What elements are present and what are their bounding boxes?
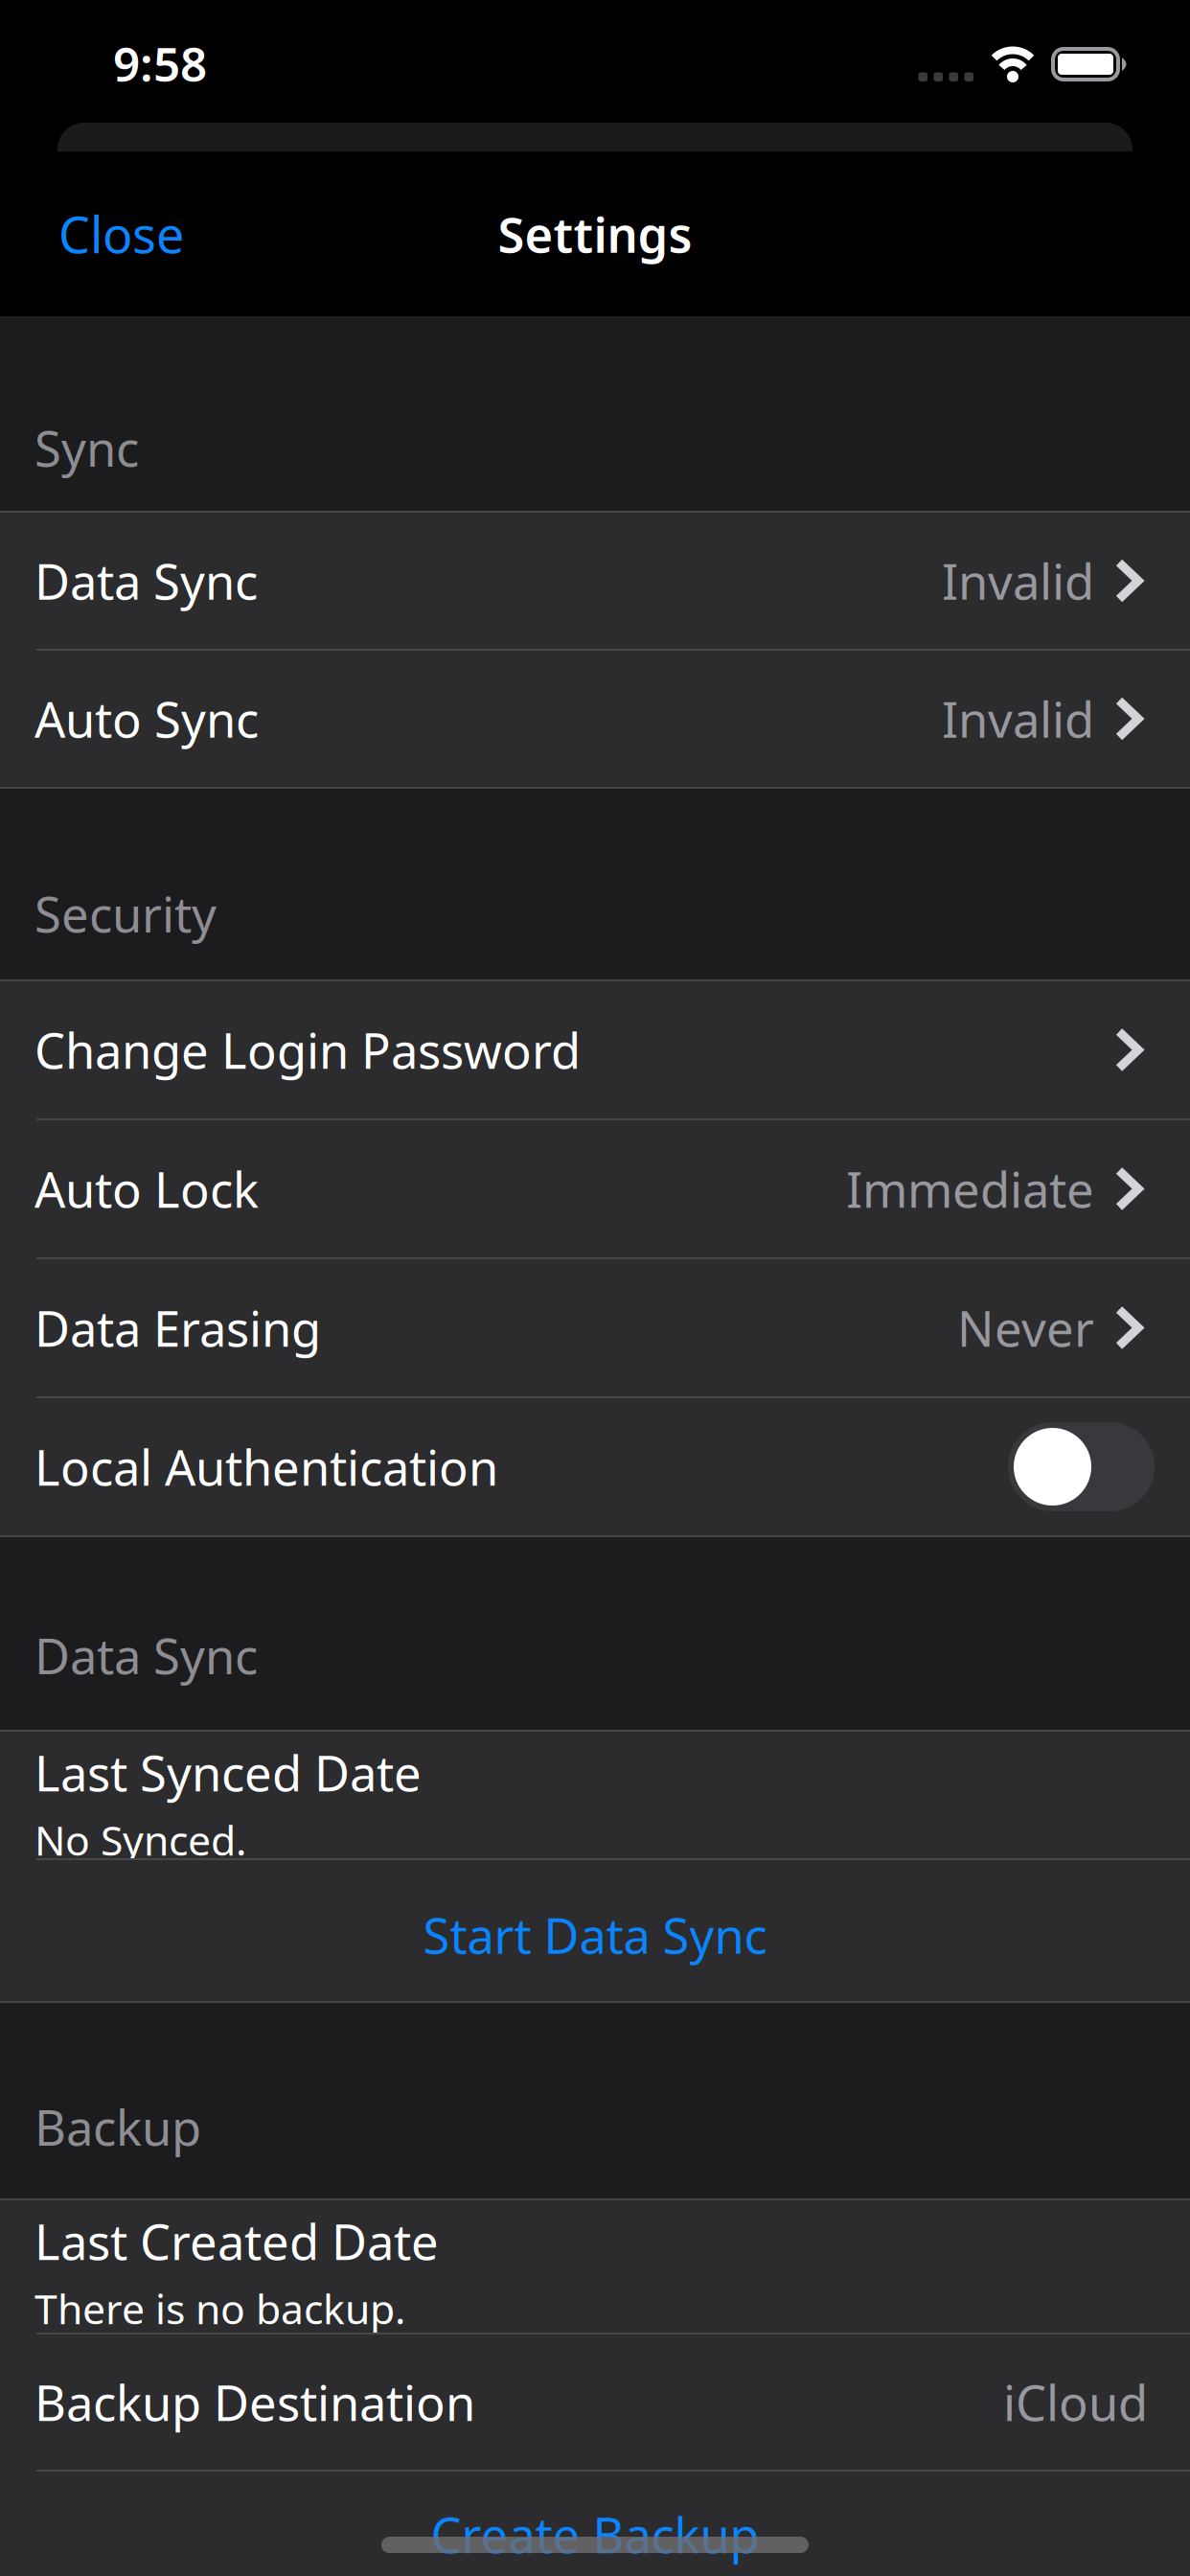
staticText: Data Sync [34,1623,258,1688]
staticText: Close [58,201,184,267]
staticText: Auto Lock [34,1157,259,1221]
staticText: Backup [34,2095,201,2159]
button[interactable]: Start Data Sync [0,1860,1190,2001]
staticText: Invalid [942,549,1094,613]
staticText: Immediate [846,1157,1094,1221]
staticText: iCloud [1003,2370,1148,2434]
staticText: Backup Destination [34,2370,475,2434]
staticText: Local Authentication [34,1435,498,1499]
staticText: Create Backup [431,2502,759,2567]
staticText: Settings [498,202,692,266]
staticText: No Synced. [34,1812,246,1867]
button[interactable]: Create Backup [0,2472,1190,2576]
staticText: Start Data Sync [423,1903,767,1967]
staticText: Data Erasing [34,1296,321,1360]
button[interactable]: Auto Sync [0,651,1190,787]
button[interactable]: Data Erasing [0,1259,1190,1396]
staticText: Security [34,881,217,946]
staticText: Invalid [942,687,1094,751]
button[interactable]: Auto Lock [0,1120,1190,1257]
staticText: Change Login Password [34,1018,581,1082]
button[interactable]: Local Authentication [1008,1422,1155,1511]
staticText: Never [957,1296,1094,1360]
staticText: 9:58 [113,32,207,95]
staticText: Auto Sync [34,687,259,751]
staticText: Data Sync [34,549,258,613]
button[interactable]: Close [58,201,184,267]
button[interactable]: Backup Destination [0,2334,1190,2470]
staticText: Last Synced Date [34,1740,422,1805]
staticText: Last Created Date [34,2209,439,2273]
staticText: There is no backup. [34,2281,405,2335]
button[interactable]: Data Sync [0,513,1190,649]
staticText: Sync [34,416,139,480]
button[interactable]: Change Login Password [0,981,1190,1118]
